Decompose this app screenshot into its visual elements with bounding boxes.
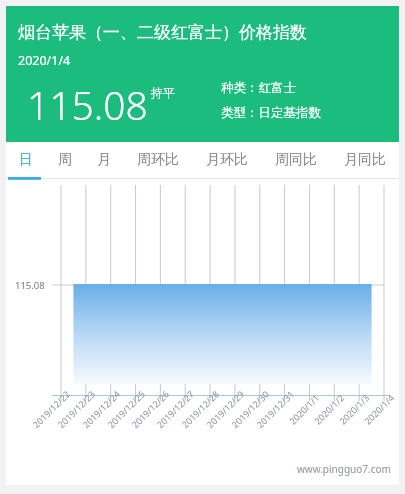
- staticText: 2020/1/4: [18, 52, 71, 69]
- staticText: 烟台苹果（一、二级红富士）价格指数: [18, 22, 307, 43]
- button[interactable]: 周同比: [261, 142, 330, 178]
- button[interactable]: 周环比: [123, 142, 192, 178]
- staticText: 日: [19, 151, 33, 169]
- button[interactable]: 月环比: [192, 142, 261, 178]
- staticText: 周: [58, 151, 72, 169]
- staticText: 2019/12/26: [129, 388, 171, 430]
- staticText: 持平: [151, 85, 175, 100]
- button[interactable]: 月: [84, 142, 123, 178]
- staticText: 2019/12/23: [55, 388, 97, 430]
- staticText: 月同比: [344, 151, 386, 169]
- staticText: 2020/1/4: [361, 391, 397, 427]
- staticText: 2020/1/2: [311, 391, 347, 427]
- staticText: 周环比: [137, 151, 179, 169]
- staticText: 2019/12/29: [204, 388, 246, 430]
- staticText: www.pingguo7.com: [297, 462, 391, 476]
- staticText: 115.08: [15, 279, 45, 292]
- staticText: 2019/12/30: [229, 388, 271, 430]
- staticText: 月: [97, 151, 111, 169]
- button[interactable]: 月同比: [330, 142, 399, 178]
- staticText: 2019/12/25: [105, 388, 147, 430]
- staticText: 种类：红富士: [221, 80, 296, 96]
- staticText: 月环比: [206, 151, 248, 169]
- button[interactable]: 周: [45, 142, 84, 178]
- staticText: 类型：日定基指数: [221, 105, 321, 121]
- staticText: 2019/12/22: [30, 388, 72, 430]
- staticText: 2020/1/3: [336, 391, 372, 427]
- staticText: 2019/12/31: [254, 388, 296, 430]
- button[interactable]: 日: [6, 142, 45, 178]
- staticText: 2020/1/1: [286, 391, 322, 427]
- staticText: 2019/12/28: [179, 388, 221, 430]
- staticText: 2019/12/27: [154, 388, 196, 430]
- staticText: 2019/12/24: [80, 388, 122, 430]
- staticText: 周同比: [275, 151, 317, 169]
- staticText: 115.08: [27, 78, 148, 131]
